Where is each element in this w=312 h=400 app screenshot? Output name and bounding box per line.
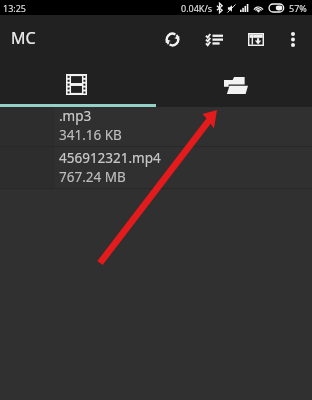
staticText: 0.04K/s	[181, 2, 213, 14]
staticText: 13:25	[3, 2, 27, 14]
staticText: .mp3	[59, 107, 92, 125]
button[interactable]: Download	[232, 15, 272, 60]
staticText: 341.16 KB	[59, 126, 122, 144]
staticText: 456912321.mp4	[59, 149, 161, 167]
button[interactable]: Folders tab	[156, 60, 312, 104]
staticText: 57%	[289, 2, 307, 14]
button[interactable]: Select items	[192, 15, 232, 60]
button[interactable]: Refresh	[152, 15, 192, 60]
button[interactable]: .mp3	[0, 107, 312, 146]
staticText: 767.24 MB	[59, 168, 126, 186]
button[interactable]: More options	[272, 15, 312, 60]
button[interactable]: 456912321.mp4	[0, 147, 312, 188]
button[interactable]: Videos tab	[0, 60, 156, 104]
staticText: MC	[11, 27, 36, 49]
